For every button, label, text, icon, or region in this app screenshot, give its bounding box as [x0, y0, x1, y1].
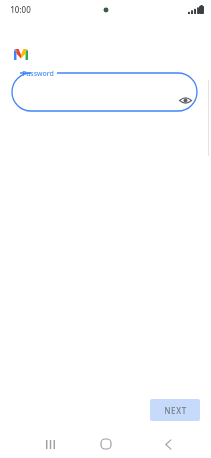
staticText: 10:00 — [10, 4, 31, 15]
staticText: Password — [22, 69, 54, 79]
button[interactable]: Home — [94, 432, 118, 456]
staticText: NEXT — [164, 405, 187, 416]
button[interactable]: Back — [156, 432, 180, 456]
button[interactable]: Password — [0, 64, 211, 118]
button[interactable]: NEXT — [150, 399, 200, 421]
button[interactable]: Show password — [176, 91, 194, 109]
button[interactable]: Recent apps — [38, 432, 62, 456]
